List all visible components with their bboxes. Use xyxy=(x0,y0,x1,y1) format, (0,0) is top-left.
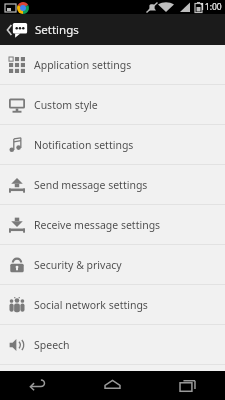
staticText: Settings xyxy=(35,22,79,38)
staticText: Custom style xyxy=(34,98,98,112)
button[interactable]: Navigate up, Settings xyxy=(0,14,225,45)
button[interactable]: Notification settings xyxy=(0,125,225,164)
button[interactable]: Send message settings xyxy=(0,165,225,204)
button[interactable]: Receive message settings xyxy=(0,205,225,244)
staticText: 11:00 xyxy=(200,1,222,13)
button[interactable]: Back xyxy=(0,371,75,400)
staticText: Application settings xyxy=(34,58,132,72)
staticText: Notification settings xyxy=(34,138,134,152)
button[interactable]: Recent apps xyxy=(150,371,225,400)
button[interactable]: Security & privacy xyxy=(0,245,225,284)
button[interactable]: Speech xyxy=(0,325,225,364)
button[interactable]: Social network settings xyxy=(0,285,225,324)
button[interactable]: Custom style xyxy=(0,85,225,124)
staticText: Social network settings xyxy=(34,298,148,312)
button[interactable]: Application settings xyxy=(0,45,225,84)
staticText: Receive message settings xyxy=(34,218,161,232)
button[interactable]: Home xyxy=(75,371,150,400)
staticText: Security & privacy xyxy=(34,258,122,272)
staticText: Speech xyxy=(34,338,70,352)
staticText: Send message settings xyxy=(34,178,148,192)
